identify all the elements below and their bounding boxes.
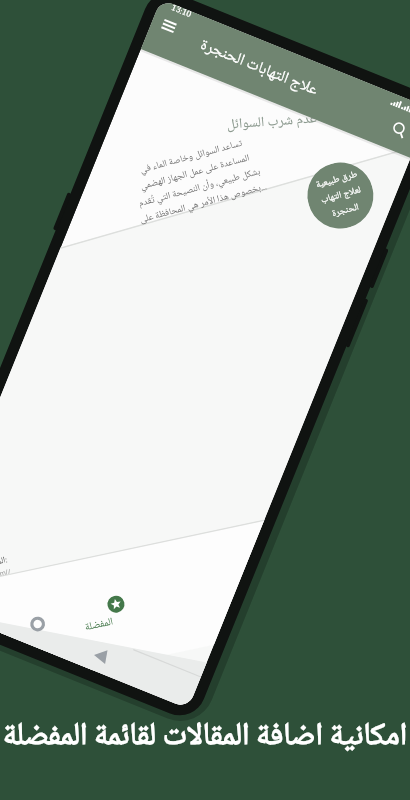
staticText: بخصوص هذا الأمر هي المحافظة على... [133,140,273,267]
button[interactable]: طرق طبيعية [280,135,401,256]
button[interactable] [389,119,410,140]
staticText: المساعدة على عمل الجهاز الهضمي [133,117,256,229]
staticText: بشكل طبيعي، وأن النصيحة التي تُقدم [132,126,267,250]
staticText: المصدر: [0,544,14,580]
button[interactable] [22,607,53,639]
staticText: لعلاج التهاب [314,170,367,221]
staticText: طرق طبيعية [309,154,364,206]
button[interactable] [102,590,130,618]
staticText: عدم شرب السوائل [218,77,327,168]
button[interactable] [161,19,177,33]
button[interactable]: المفضلة [62,592,136,659]
button[interactable]: امكانية اضافة المقالات لقائمة المفضلة [0,711,410,764]
staticText: علاج التهابات الحنجرة [196,32,323,104]
staticText: الحنجرة [325,191,366,230]
staticText: http://www.webteb.com// [0,543,14,618]
staticText: المفضلة [78,604,121,646]
button[interactable] [85,641,116,672]
staticText: 13:10 [169,4,192,22]
staticText: تساعد السوائل وخاصة الماء في [133,104,249,210]
